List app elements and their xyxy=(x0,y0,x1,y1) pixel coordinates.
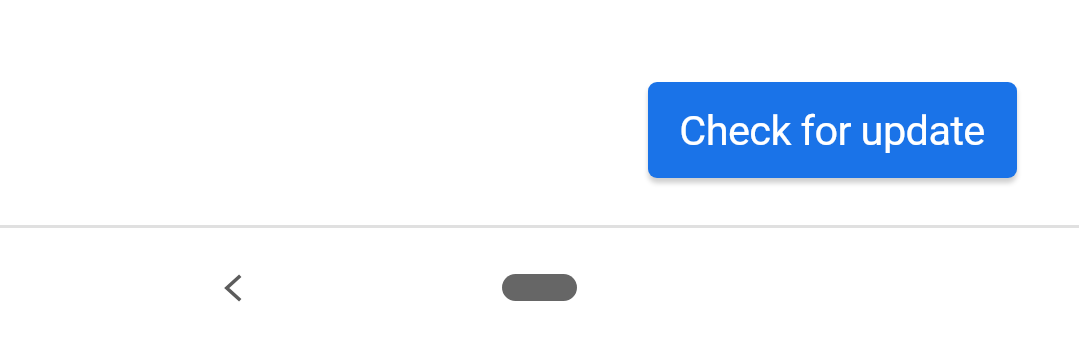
button[interactable]: Check for update xyxy=(648,82,1017,178)
button[interactable]: Home xyxy=(502,274,577,301)
staticText: Check for update xyxy=(679,106,985,155)
button[interactable]: Back xyxy=(200,255,265,320)
